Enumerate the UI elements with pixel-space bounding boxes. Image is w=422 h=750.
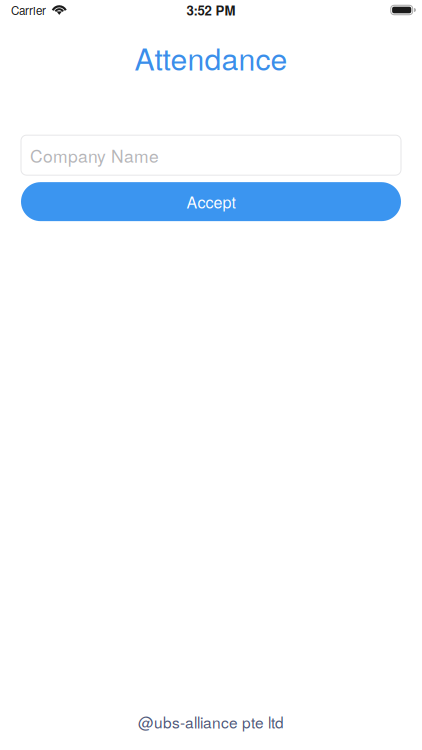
staticText: @ubs-alliance pte ltd [138,711,284,733]
staticText: Attendance [134,36,287,79]
staticText: Accept [186,190,235,213]
staticText: Company Name [30,143,159,168]
button[interactable]: Company Name [21,135,401,175]
staticText: Carrier [11,2,46,18]
staticText: 3:52 PM [186,0,235,19]
button[interactable]: Accept [21,182,401,221]
